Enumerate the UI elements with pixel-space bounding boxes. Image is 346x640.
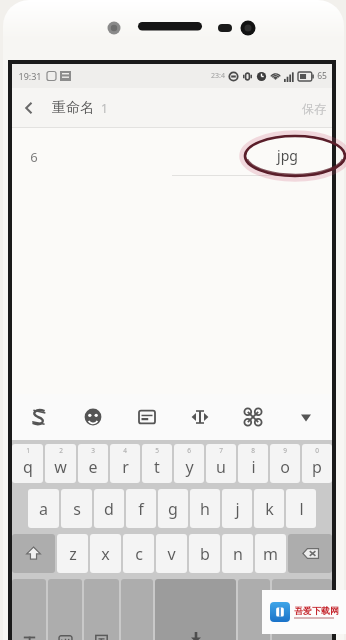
button[interactable]: 6 — [174, 444, 204, 483]
button[interactable]: Back — [12, 91, 46, 125]
button[interactable]: 123 keypad — [48, 579, 82, 640]
button[interactable]: Emoji — [66, 394, 120, 440]
button[interactable]: 1 — [12, 444, 43, 483]
button[interactable]: m — [255, 534, 286, 573]
button[interactable]: 9 — [270, 444, 300, 483]
staticText: 8 — [251, 446, 255, 455]
button[interactable]: Watermark — [262, 590, 346, 634]
button[interactable]: 5 — [142, 444, 172, 483]
button[interactable]: x — [90, 534, 121, 573]
button[interactable]: Collapse — [279, 394, 332, 440]
staticText: 1 — [26, 446, 30, 455]
button[interactable]: v — [156, 534, 187, 573]
button[interactable]: Move cursor — [173, 394, 226, 440]
staticText: f — [138, 498, 144, 520]
staticText: 吾爱下载网 — [294, 605, 339, 616]
staticText: 0 — [315, 446, 319, 455]
button[interactable]: Clipboard cards — [120, 394, 173, 440]
staticText: 7 — [219, 446, 223, 455]
button[interactable]: s — [61, 489, 92, 528]
staticText: l — [299, 498, 304, 520]
button[interactable]: 2 — [45, 444, 76, 483]
button[interactable]: c — [123, 534, 154, 573]
staticText: 19:31 — [18, 70, 42, 82]
staticText: o — [280, 456, 290, 478]
button[interactable]: d — [94, 489, 124, 528]
staticText: g — [168, 498, 178, 520]
button[interactable]: Switch language — [84, 579, 119, 640]
button[interactable]: Shift — [12, 534, 55, 573]
staticText: jpg — [277, 146, 298, 165]
button[interactable]: Tools — [226, 394, 279, 440]
button[interactable]: k — [254, 489, 284, 528]
button[interactable]: z — [57, 534, 88, 573]
button[interactable]: a — [28, 489, 59, 528]
staticText: 9 — [283, 446, 287, 455]
staticText: q — [23, 456, 33, 478]
staticText: d — [104, 498, 114, 520]
staticText: v — [167, 543, 176, 565]
staticText: 保存 — [302, 101, 326, 116]
staticText: h — [200, 498, 210, 520]
staticText: 23:4 — [211, 71, 225, 81]
button[interactable]: Backspace — [288, 534, 332, 573]
button[interactable]: l — [286, 489, 316, 528]
staticText: z — [69, 543, 77, 565]
button[interactable]: 0 — [302, 444, 332, 483]
button[interactable]: 8 — [238, 444, 268, 483]
staticText: 3 — [91, 446, 95, 455]
staticText: 重命名 — [52, 99, 94, 117]
button[interactable]: Enter — [272, 579, 332, 640]
button[interactable]: Symbols — [12, 579, 46, 640]
staticText: 1 — [101, 100, 108, 116]
staticText: i — [251, 456, 256, 478]
button[interactable]: h — [190, 489, 220, 528]
button[interactable]: b — [189, 534, 220, 573]
staticText: k — [265, 498, 274, 520]
staticText: m — [263, 543, 278, 565]
staticText: x — [101, 543, 110, 565]
button[interactable]: Sogou input — [12, 394, 66, 440]
staticText: 6 — [187, 446, 191, 455]
staticText: u — [216, 456, 226, 478]
staticText: 4 — [123, 446, 127, 455]
button[interactable]: 4 — [110, 444, 140, 483]
staticText: y — [185, 456, 194, 478]
button[interactable]: n — [222, 534, 253, 573]
staticText: j — [235, 498, 240, 520]
button[interactable]: f — [126, 489, 156, 528]
staticText: p — [312, 456, 322, 478]
staticText: n — [233, 543, 243, 565]
staticText: 5 — [155, 446, 159, 455]
staticText: r — [122, 456, 129, 478]
staticText: c — [135, 543, 143, 565]
staticText: s — [73, 498, 81, 520]
staticText: b — [200, 543, 210, 565]
staticText: t — [154, 456, 160, 478]
staticText: 2 — [59, 446, 63, 455]
button[interactable]: 3 — [78, 444, 108, 483]
button[interactable]: j — [222, 489, 252, 528]
button[interactable]: Space — [155, 579, 236, 640]
button[interactable]: g — [158, 489, 188, 528]
staticText: 65 — [317, 70, 327, 82]
button[interactable]: Period — [238, 579, 270, 640]
staticText: a — [39, 498, 48, 520]
staticText: w — [54, 456, 67, 478]
button[interactable]: 保存 — [302, 101, 326, 116]
button[interactable]: 7 — [206, 444, 236, 483]
staticText: 6 — [30, 148, 38, 166]
staticText: e — [88, 456, 98, 478]
